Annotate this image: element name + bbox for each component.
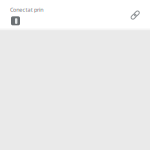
button[interactable]: Connected app [10,16,20,25]
button[interactable]: Link [130,11,140,20]
staticText: Conectat prin [10,6,43,13]
